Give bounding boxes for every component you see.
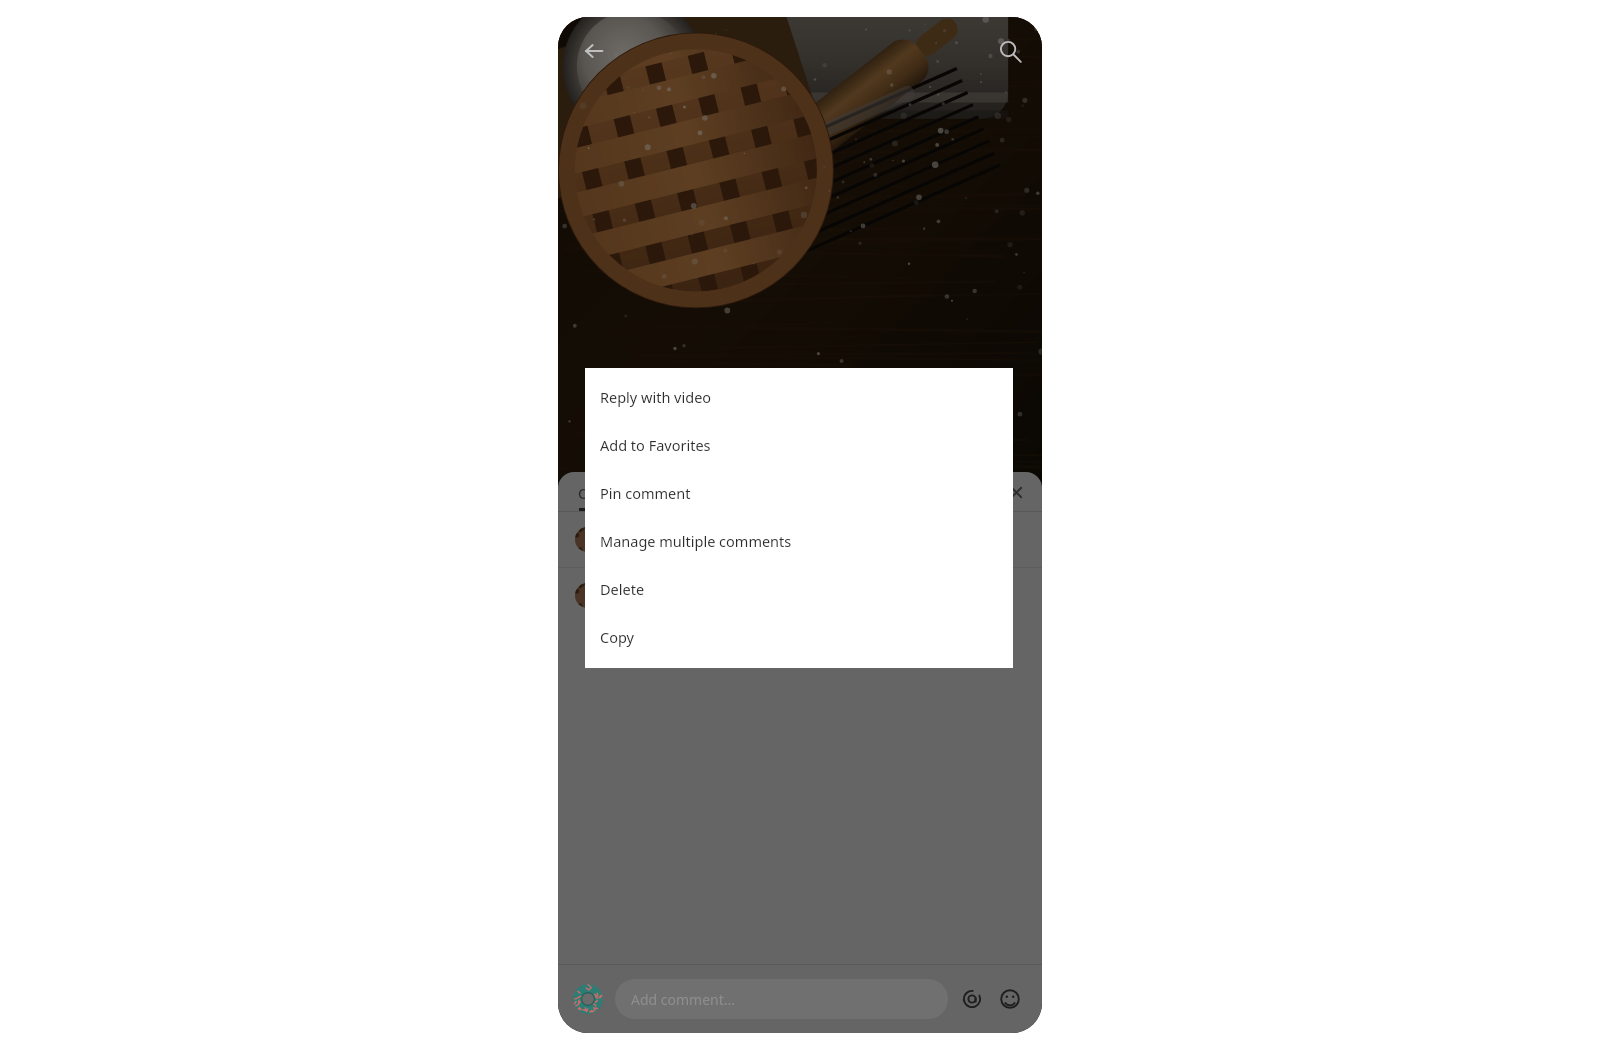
button[interactable]: Pin comment <box>585 469 1013 517</box>
button[interactable]: Search <box>988 29 1032 73</box>
button[interactable]: Mention someone <box>954 981 990 1017</box>
button[interactable]: Manage multiple comments <box>585 517 1013 565</box>
button[interactable] <box>558 568 1042 623</box>
staticText: Manage multiple comments <box>600 531 792 551</box>
button[interactable]: Add to Favorites <box>585 421 1013 469</box>
staticText: Delete <box>600 579 645 599</box>
staticText: Add comment... <box>631 990 736 1009</box>
staticText: Copy <box>600 627 634 647</box>
button[interactable]: Your profile <box>572 983 604 1015</box>
button[interactable]: Delete <box>585 565 1013 613</box>
button[interactable]: Copy <box>585 613 1013 661</box>
button[interactable]: Add emoji <box>992 981 1028 1017</box>
button[interactable]: Comments <box>578 484 651 511</box>
button[interactable]: Reply with video <box>585 373 1013 421</box>
staticText: Reply with video <box>600 387 712 407</box>
button[interactable]: Back <box>572 29 616 73</box>
button[interactable]: Add comment... <box>615 979 948 1019</box>
staticText: Comments <box>578 484 651 503</box>
staticText: Add to Favorites <box>600 435 711 455</box>
button[interactable] <box>558 512 1042 567</box>
staticText: Pin comment <box>600 483 691 503</box>
button[interactable]: Close comments <box>998 474 1034 510</box>
